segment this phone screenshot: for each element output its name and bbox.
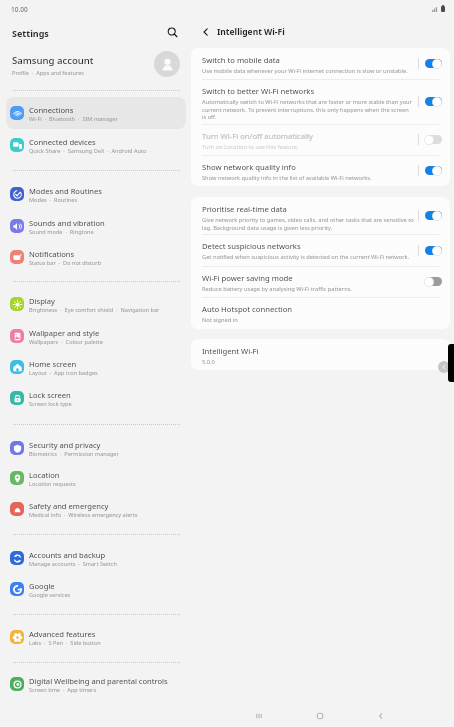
staticText: Profile · Apps and features bbox=[12, 69, 85, 77]
staticText: Advanced features bbox=[29, 629, 96, 639]
staticText: Turn on Location to use this feature. bbox=[202, 143, 299, 151]
staticText: Intelligent Wi-Fi bbox=[217, 26, 285, 38]
staticText: Manage accounts · Smart Switch bbox=[29, 560, 117, 568]
button[interactable]: Switch to better Wi-Fi networks bbox=[424, 96, 442, 107]
button[interactable]: Turn Wi-Fi on/off automatically bbox=[191, 124, 450, 155]
staticText: Medical info · Wireless emergency alerts bbox=[29, 511, 138, 519]
button[interactable]: Turn Wi-Fi on/off automatically bbox=[424, 134, 442, 145]
button[interactable]: Advanced features bbox=[6, 621, 186, 653]
button[interactable]: Wallpaper and style bbox=[6, 320, 186, 352]
button[interactable]: Safety and emergency bbox=[6, 493, 186, 525]
staticText: Switch to mobile data bbox=[202, 55, 280, 65]
button[interactable]: Display bbox=[6, 288, 186, 320]
staticText: Location bbox=[29, 470, 60, 480]
staticText: Detect suspicious networks bbox=[202, 241, 301, 251]
staticText: Intelligent Wi-Fi bbox=[202, 346, 259, 356]
staticText: Connected devices bbox=[29, 137, 96, 147]
staticText: Brightness · Eye comfort shield · Naviga… bbox=[29, 306, 160, 314]
button[interactable]: Detect suspicious networks bbox=[424, 245, 442, 256]
staticText: Wallpapers · Colour palette bbox=[29, 338, 103, 346]
button[interactable]: Switch to mobile data bbox=[424, 58, 442, 69]
staticText: Google bbox=[29, 581, 55, 591]
staticText: Google services bbox=[29, 591, 71, 599]
staticText: Modes and Routines bbox=[29, 186, 102, 196]
staticText: Give network priority to games, video ca… bbox=[202, 216, 414, 232]
staticText: Get notified when suspicious activity is… bbox=[202, 253, 410, 261]
staticText: Prioritise real-time data bbox=[202, 204, 287, 214]
staticText: Screen lock type bbox=[29, 400, 72, 408]
staticText: Security and privacy bbox=[29, 440, 101, 450]
staticText: Sounds and vibration bbox=[29, 218, 105, 228]
button[interactable]: Connected devices bbox=[6, 129, 186, 161]
staticText: Screen time · App timers bbox=[29, 686, 97, 694]
staticText: Turn Wi-Fi on/off automatically bbox=[202, 131, 313, 141]
button[interactable]: Accounts and backup bbox=[6, 542, 186, 574]
button[interactable]: Modes and Routines bbox=[6, 178, 186, 210]
staticText: Wallpaper and style bbox=[29, 328, 100, 338]
staticText: Use mobile data whenever your Wi-Fi inte… bbox=[202, 67, 408, 75]
staticText: Status bar · Do not disturb bbox=[29, 259, 102, 267]
staticText: Safety and emergency bbox=[29, 501, 109, 511]
button[interactable]: Switch to better Wi-Fi networks bbox=[191, 79, 450, 124]
staticText: Modes · Routines bbox=[29, 196, 78, 204]
staticText: Wi-Fi power saving mode bbox=[202, 273, 293, 283]
button[interactable]: Recent apps bbox=[248, 705, 270, 727]
staticText: Show network quality info bbox=[202, 162, 296, 172]
staticText: Reduce battery usage by analysing Wi-Fi … bbox=[202, 285, 352, 293]
staticText: Not signed in bbox=[202, 316, 238, 324]
staticText: 5.0.0 bbox=[202, 358, 215, 366]
button[interactable]: Lock screen bbox=[6, 382, 186, 414]
staticText: Display bbox=[29, 296, 55, 306]
button[interactable]: Wi-Fi power saving mode bbox=[424, 276, 442, 287]
button[interactable]: Digital Wellbeing and parental controls bbox=[6, 668, 186, 700]
button[interactable]: Wi-Fi power saving mode bbox=[191, 266, 450, 297]
button[interactable]: Prioritise real-time data bbox=[191, 197, 450, 234]
staticText: Labs · S Pen · Side button bbox=[29, 639, 101, 647]
button[interactable]: Intelligent Wi-Fi bbox=[191, 339, 450, 370]
button[interactable]: Back bbox=[370, 705, 392, 727]
staticText: Layout · App icon badges bbox=[29, 369, 98, 377]
staticText: Location requests bbox=[29, 480, 76, 488]
button[interactable]: Notifications bbox=[6, 241, 186, 273]
staticText: Accounts and backup bbox=[29, 550, 106, 560]
button[interactable]: Home bbox=[309, 705, 331, 727]
staticText: Wi-Fi · Bluetooth · SIM manager bbox=[29, 115, 118, 123]
staticText: Quick Share · Samsung DeX · Android Auto bbox=[29, 147, 147, 155]
button[interactable]: Detect suspicious networks bbox=[191, 234, 450, 266]
staticText: Samsung account bbox=[12, 54, 94, 67]
staticText: Home screen bbox=[29, 359, 77, 369]
button[interactable]: Location bbox=[6, 462, 186, 494]
button[interactable]: Back bbox=[197, 23, 215, 41]
button[interactable]: Sounds and vibration bbox=[6, 210, 186, 242]
button[interactable]: Google bbox=[6, 573, 186, 605]
button[interactable]: Switch to mobile data bbox=[191, 48, 450, 79]
button[interactable]: Edge panel bbox=[438, 361, 450, 373]
staticText: Auto Hotspot connection bbox=[202, 304, 293, 314]
staticText: Sound mode · Ringtone bbox=[29, 228, 94, 236]
button[interactable]: Samsung account bbox=[0, 48, 192, 82]
staticText: Notifications bbox=[29, 249, 75, 259]
staticText: Switch to better Wi-Fi networks bbox=[202, 86, 315, 96]
staticText: Biometrics · Permission manager bbox=[29, 450, 119, 458]
staticText: Connections bbox=[29, 105, 74, 115]
staticText: Lock screen bbox=[29, 390, 71, 400]
button[interactable]: Security and privacy bbox=[6, 432, 186, 464]
staticText: Show network quality info in the list of… bbox=[202, 174, 372, 182]
button[interactable]: Show network quality info bbox=[424, 165, 442, 176]
button[interactable]: Auto Hotspot connection bbox=[191, 297, 450, 329]
button[interactable]: Show network quality info bbox=[191, 155, 450, 186]
staticText: Automatically switch to Wi-Fi networks t… bbox=[202, 98, 414, 121]
staticText: 10.00 bbox=[11, 5, 28, 14]
button[interactable]: Connections bbox=[6, 97, 186, 129]
staticText: Settings bbox=[12, 27, 49, 39]
button[interactable]: Home screen bbox=[6, 351, 186, 383]
button[interactable]: Search bbox=[163, 23, 182, 42]
staticText: Digital Wellbeing and parental controls bbox=[29, 676, 168, 686]
button[interactable]: Prioritise real-time data bbox=[424, 210, 442, 221]
